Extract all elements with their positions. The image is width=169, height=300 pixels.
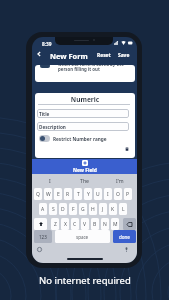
button[interactable]: Y (84, 188, 92, 200)
button[interactable]: Shift (34, 218, 47, 230)
button[interactable]: Q (34, 188, 42, 200)
staticText: I (107, 191, 109, 198)
button[interactable]: A (39, 203, 47, 215)
button[interactable]: I'm (102, 174, 137, 186)
staticText: Restrict Number range (53, 136, 107, 142)
button[interactable]: The (67, 174, 102, 186)
staticText: I'm (116, 177, 124, 184)
staticText: W (46, 191, 51, 198)
staticText: 8:39 (42, 41, 52, 48)
button[interactable]: Save (117, 50, 131, 61)
button[interactable]: O (114, 188, 122, 200)
button[interactable]: done (113, 230, 136, 243)
staticText: R (66, 191, 70, 198)
button[interactable]: W (44, 188, 52, 200)
staticText: A (41, 206, 45, 213)
button[interactable]: M (111, 218, 119, 230)
button[interactable]: T (74, 188, 82, 200)
staticText: P (126, 191, 130, 198)
button[interactable]: when the form is saved by the (35, 65, 135, 82)
button[interactable]: Delete field (122, 144, 131, 153)
button[interactable]: D (59, 203, 67, 215)
staticText: D (61, 206, 65, 213)
button[interactable]: Reset (96, 50, 112, 61)
button[interactable]: U (94, 188, 102, 200)
staticText: The (80, 177, 90, 184)
button[interactable]: B (91, 218, 99, 230)
button[interactable]: G (79, 203, 87, 215)
button[interactable]: I (32, 174, 67, 186)
staticText: New Field (73, 167, 97, 174)
staticText: when the form is saved by the (58, 65, 124, 67)
button[interactable]: Description (37, 122, 129, 131)
button[interactable]: V (81, 218, 89, 230)
button[interactable]: H (89, 203, 97, 215)
staticText: K (111, 206, 115, 213)
staticText: Y (87, 191, 90, 198)
staticText: L (122, 206, 125, 213)
staticText: G (81, 206, 85, 213)
staticText: C (73, 221, 77, 228)
button[interactable]: Restrict Number range (39, 135, 107, 142)
button[interactable]: Microphone (123, 246, 130, 253)
staticText: Z (54, 221, 57, 228)
staticText: E (57, 191, 60, 198)
button[interactable]: I (104, 188, 112, 200)
staticText: F (72, 206, 75, 213)
staticText: I (49, 177, 51, 184)
staticText: New Form (50, 51, 88, 61)
staticText: B (93, 221, 97, 228)
staticText: T (77, 191, 80, 198)
staticText: X (64, 221, 67, 228)
button[interactable]: P (124, 188, 132, 200)
staticText: Reset (97, 52, 111, 59)
button[interactable]: Z (51, 218, 59, 230)
staticText: person filling it out (58, 66, 100, 72)
staticText: S (52, 206, 55, 213)
button[interactable]: Back (34, 49, 43, 58)
staticText: O (116, 191, 120, 198)
staticText: Description (39, 124, 66, 130)
button[interactable]: S (49, 203, 57, 215)
staticText: M (113, 221, 118, 228)
button[interactable]: C (71, 218, 79, 230)
staticText: H (91, 206, 95, 213)
button[interactable]: F (69, 203, 77, 215)
staticText: space (76, 234, 89, 240)
button[interactable]: L (119, 203, 127, 215)
staticText: J (102, 206, 104, 213)
staticText: done (119, 234, 130, 240)
staticText: Title (39, 111, 50, 117)
staticText: Numeric (35, 95, 135, 104)
button[interactable]: Title (37, 109, 129, 118)
button[interactable]: Emoji (36, 246, 43, 253)
button[interactable]: New Field (32, 159, 137, 175)
staticText: N (103, 221, 107, 228)
button[interactable]: N (101, 218, 109, 230)
button[interactable]: K (109, 203, 117, 215)
staticText: Q (36, 191, 40, 198)
button[interactable]: space (55, 230, 110, 243)
button[interactable]: E (54, 188, 62, 200)
staticText: No internet required (39, 274, 131, 287)
button[interactable]: 123 (34, 230, 52, 243)
staticText: V (83, 221, 87, 228)
staticText: U (96, 191, 100, 198)
staticText: 123 (39, 234, 47, 240)
staticText: Save (118, 52, 130, 59)
button[interactable]: Backspace (123, 218, 136, 230)
button[interactable]: R (64, 188, 72, 200)
button[interactable]: X (61, 218, 69, 230)
button[interactable]: J (99, 203, 107, 215)
